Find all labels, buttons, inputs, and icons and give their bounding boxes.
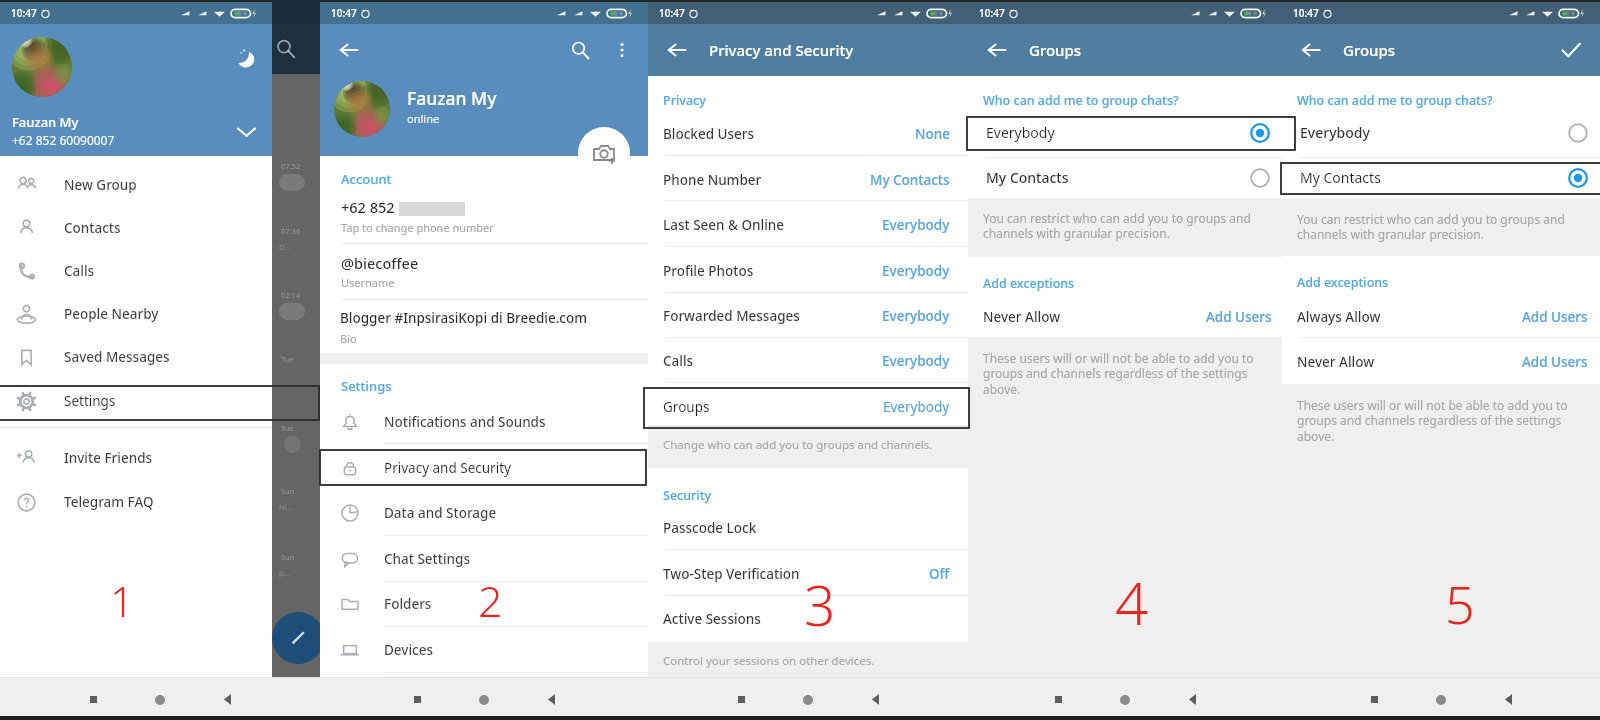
button[interactable]: Active Sessions — [648, 598, 968, 640]
button[interactable]: Home — [785, 683, 831, 716]
button[interactable]: Back — [332, 33, 366, 67]
button[interactable]: Back — [204, 683, 250, 716]
button[interactable]: Back — [1169, 683, 1215, 716]
button[interactable]: Everybody — [968, 111, 1282, 153]
button[interactable]: Calls — [0, 250, 272, 292]
staticText: Notifications and Sounds — [384, 413, 546, 431]
button[interactable]: Telegram FAQ — [0, 481, 272, 523]
staticText: Active Sessions — [663, 610, 761, 628]
button[interactable]: Search — [564, 34, 596, 66]
staticText: online — [407, 111, 440, 126]
staticText: 02:14 — [281, 290, 301, 300]
button[interactable]: @biecoffee — [320, 248, 648, 296]
button[interactable]: Data and Storage — [320, 491, 648, 535]
button[interactable]: Contacts — [0, 207, 272, 249]
button[interactable]: Devices — [320, 628, 648, 672]
button[interactable]: My Contacts — [1282, 156, 1600, 198]
staticText: Add Users — [1522, 353, 1588, 371]
staticText: Who can add me to group chats? — [983, 92, 1179, 109]
button[interactable]: Back — [660, 33, 694, 67]
staticText: Who can add me to group chats? — [1297, 92, 1493, 109]
staticText: +62 852 — [341, 197, 399, 217]
staticText: Privacy and Security — [384, 459, 511, 477]
button[interactable]: Back — [528, 683, 574, 716]
button[interactable]: Two-Step Verification — [648, 553, 968, 595]
button[interactable]: Blogger #InpsirasiKopi di Breedie.com — [320, 304, 648, 352]
button[interactable]: My Contacts — [968, 156, 1282, 198]
button[interactable]: People Nearby — [0, 293, 272, 335]
button[interactable]: Calls — [648, 340, 968, 382]
button[interactable]: Blocked Users — [648, 113, 968, 155]
button[interactable]: Back — [980, 33, 1014, 67]
staticText: My Contacts — [870, 171, 950, 189]
staticText: 4 — [1115, 563, 1149, 642]
staticText: 1 — [110, 572, 134, 629]
button[interactable]: +62 852 — [320, 191, 648, 239]
staticText: Username — [341, 275, 395, 290]
staticText: Everybody — [1300, 123, 1370, 142]
button[interactable]: Notifications and Sounds — [320, 400, 648, 444]
button[interactable]: More options — [608, 36, 636, 64]
button[interactable]: Back — [1294, 33, 1328, 67]
staticText: 07:52 — [281, 161, 301, 171]
button[interactable]: Everybody — [1282, 111, 1600, 153]
button[interactable]: Home — [137, 683, 183, 716]
button[interactable]: Recent apps — [1035, 683, 1081, 716]
staticText: Add Users — [1522, 308, 1588, 326]
button[interactable]: Never Allow — [1282, 341, 1600, 383]
staticText: Folders — [384, 595, 432, 613]
button[interactable]: New Group — [0, 164, 272, 206]
staticText: Everybody — [882, 352, 950, 370]
staticText: Last Seen & Online — [663, 216, 785, 234]
staticText: Devices — [384, 641, 434, 659]
button[interactable]: Recent apps — [718, 683, 764, 716]
staticText: 07:36 — [281, 226, 301, 236]
staticText: Everybody — [882, 216, 950, 234]
staticText: +62 852 60090007 — [12, 132, 115, 148]
staticText: Control your sessions on other devices. — [663, 653, 875, 669]
button[interactable]: Phone Number — [648, 159, 968, 201]
button[interactable]: Search — [272, 35, 300, 63]
staticText: None — [915, 125, 950, 143]
button[interactable]: Back — [1485, 683, 1531, 716]
staticText: Settings — [64, 392, 116, 410]
button[interactable]: Settings — [0, 380, 272, 422]
staticText: Blogger #InpsirasiKopi di Breedie.com — [340, 309, 588, 327]
button[interactable]: Never Allow — [968, 296, 1282, 338]
button[interactable]: Back — [852, 683, 898, 716]
button[interactable]: Home — [1102, 683, 1148, 716]
staticText: Always Allow — [1297, 308, 1381, 326]
button[interactable]: Always Allow — [1282, 296, 1600, 338]
button[interactable]: Last Seen & Online — [648, 204, 968, 246]
staticText: Groups — [1029, 40, 1082, 60]
button[interactable]: Recent apps — [394, 683, 440, 716]
staticText: Chat Settings — [384, 550, 470, 568]
staticText: p... — [279, 568, 290, 578]
staticText: Sun — [281, 552, 295, 562]
button[interactable]: Groups — [648, 386, 968, 428]
staticText: Everybody — [882, 262, 950, 280]
button[interactable]: Home — [1418, 683, 1464, 716]
staticText: Saved Messages — [64, 348, 170, 366]
button[interactable]: Switch account — [234, 120, 258, 144]
button[interactable]: Chat Settings — [320, 537, 648, 581]
button[interactable]: Done — [1556, 35, 1586, 65]
button[interactable]: Recent apps — [70, 683, 116, 716]
staticText: Sun — [281, 486, 295, 496]
button[interactable]: Invite Friends — [0, 437, 272, 479]
staticText: Never Allow — [983, 308, 1061, 326]
staticText: Bio — [340, 331, 357, 346]
button[interactable]: Passcode Lock — [648, 507, 968, 549]
button[interactable]: Saved Messages — [0, 336, 272, 378]
button[interactable]: Profile Photos — [648, 250, 968, 292]
button[interactable]: Change profile photo — [578, 127, 630, 179]
button[interactable]: Home — [461, 683, 507, 716]
staticText: Add exceptions — [983, 275, 1075, 292]
button[interactable]: Night mode — [232, 44, 258, 70]
button[interactable]: New message — [272, 612, 324, 664]
button[interactable]: Folders — [320, 582, 648, 626]
button[interactable]: Recent apps — [1351, 683, 1397, 716]
button[interactable]: Privacy and Security — [320, 446, 648, 490]
button[interactable]: Forwarded Messages — [648, 295, 968, 337]
staticText: 2 — [478, 571, 503, 630]
